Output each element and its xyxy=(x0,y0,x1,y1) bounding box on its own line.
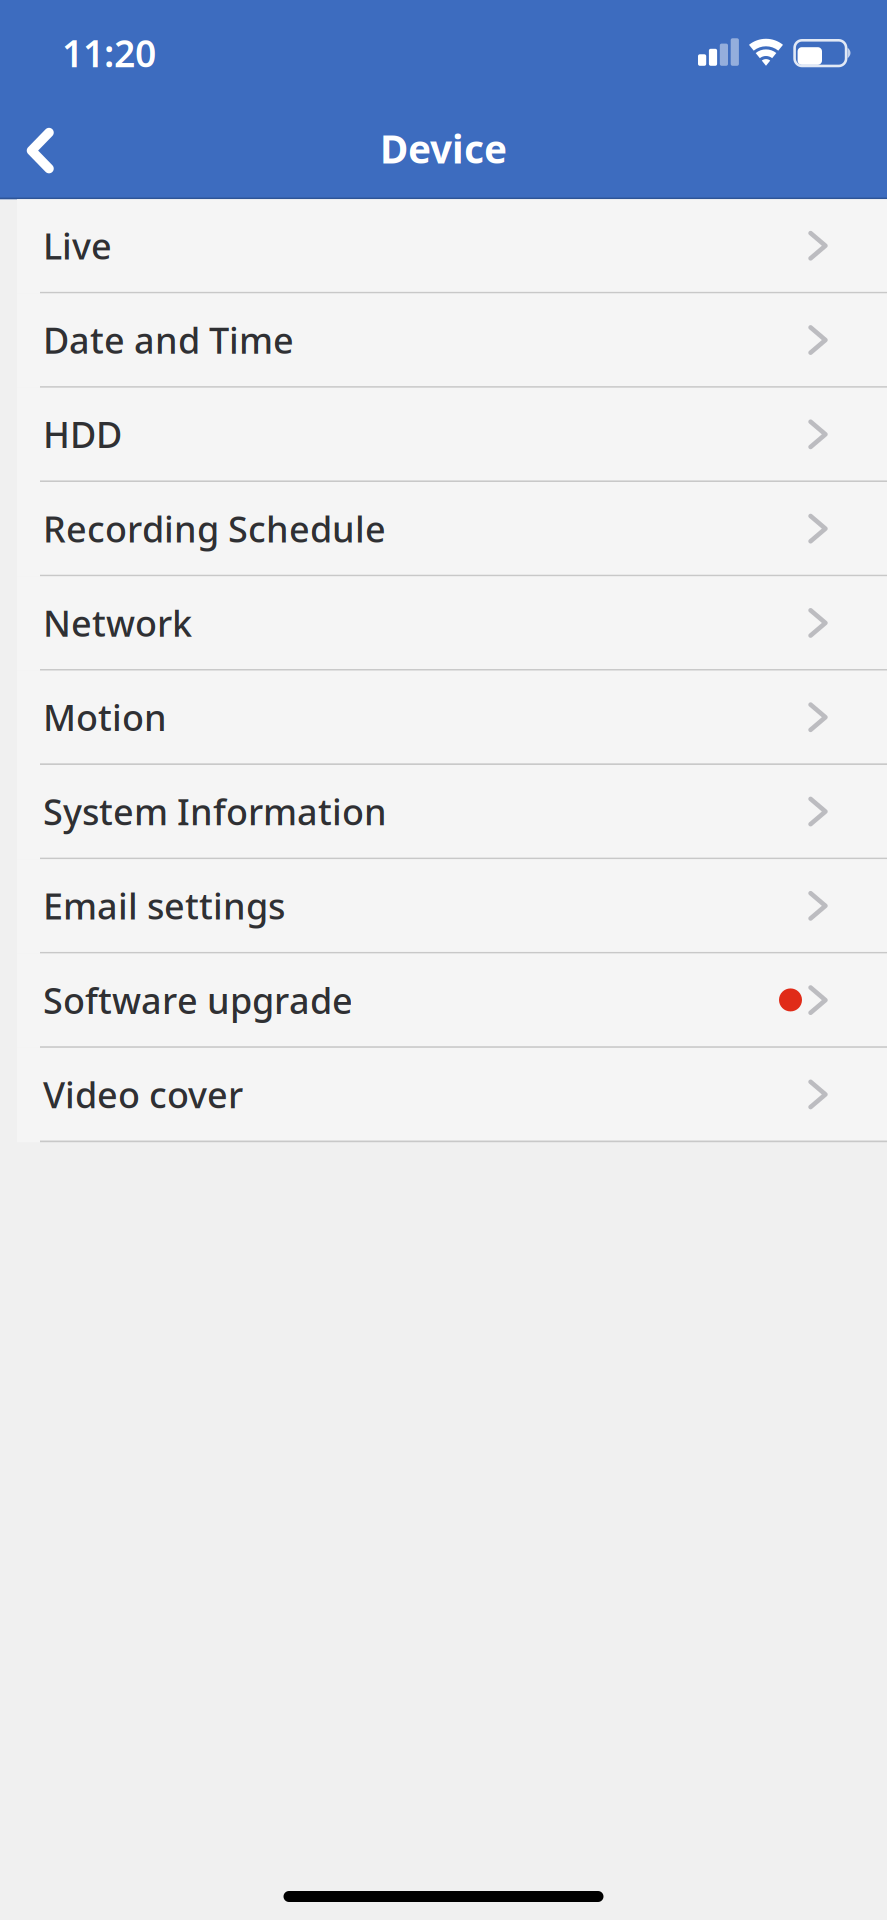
staticText: Video cover xyxy=(43,1070,243,1118)
button[interactable]: Back xyxy=(0,101,78,201)
staticText: Device xyxy=(380,123,507,174)
button[interactable]: Recording Schedule xyxy=(0,482,887,576)
staticText: Software upgrade xyxy=(43,976,353,1024)
button[interactable]: Email settings xyxy=(0,859,887,954)
staticText: System Information xyxy=(43,787,387,835)
staticText: Email settings xyxy=(43,882,285,929)
staticText: 11:20 xyxy=(62,28,156,78)
button[interactable]: System Information xyxy=(0,765,887,859)
button[interactable]: Software upgrade xyxy=(0,954,887,1048)
staticText: Motion xyxy=(43,693,167,741)
button[interactable]: Network xyxy=(0,576,887,671)
staticText: Recording Schedule xyxy=(43,504,386,552)
button[interactable]: Live xyxy=(0,199,887,293)
button[interactable]: HDD xyxy=(0,388,887,482)
button[interactable]: Video cover xyxy=(0,1048,887,1142)
staticText: Date and Time xyxy=(43,316,294,364)
staticText: Live xyxy=(43,222,112,269)
button[interactable]: Motion xyxy=(0,671,887,765)
staticText: HDD xyxy=(43,410,122,458)
staticText: Network xyxy=(43,599,192,647)
button[interactable]: Date and Time xyxy=(0,293,887,388)
